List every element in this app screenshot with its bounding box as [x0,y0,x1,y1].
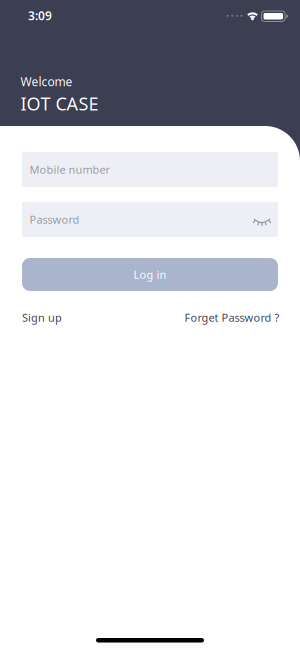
button[interactable]: Forget Password ? [184,310,279,325]
button[interactable]: Mobile number [22,152,278,187]
staticText: 3:09 [28,7,52,23]
staticText: Mobile number [29,162,110,177]
button[interactable]: Sign up [22,310,62,325]
staticText: Password [29,212,79,227]
staticText: Log in [133,267,166,282]
staticText: Forget Password ? [184,310,279,325]
button[interactable]: Log in [22,258,278,291]
staticText: Sign up [22,310,62,325]
staticText: IOT CASE [20,91,98,115]
button[interactable]: Password [22,202,278,237]
staticText: Welcome [20,73,72,89]
